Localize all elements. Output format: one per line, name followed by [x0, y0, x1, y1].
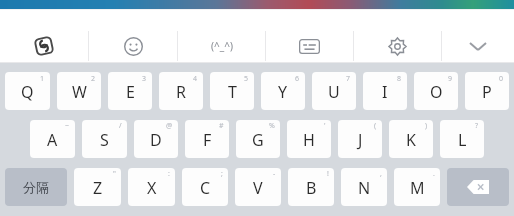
staticText: A [47, 129, 58, 151]
button[interactable]: P [465, 72, 509, 110]
button[interactable]: N [341, 168, 387, 206]
staticText: ( [374, 121, 377, 131]
button[interactable]: V [235, 168, 281, 206]
button[interactable]: O [414, 72, 458, 110]
staticText: # [219, 121, 224, 131]
button[interactable]: C [182, 168, 228, 206]
staticText: % [269, 121, 275, 131]
button[interactable]: Backspace [447, 168, 509, 206]
button[interactable]: I [363, 72, 407, 110]
staticText: C [200, 177, 211, 199]
button[interactable]: Emoji [89, 29, 177, 63]
staticText: L [458, 129, 467, 151]
staticText: T [228, 81, 237, 103]
button[interactable]: Sogou input method [0, 29, 88, 63]
staticText: E [126, 81, 135, 103]
staticText: N [358, 177, 371, 199]
staticText: G [252, 129, 264, 151]
button[interactable]: G [236, 120, 280, 158]
staticText: B [306, 177, 317, 199]
staticText: ) [425, 121, 428, 131]
staticText: 9 [448, 74, 453, 84]
button[interactable]: 分隔 [5, 168, 67, 206]
button[interactable]: M [394, 168, 440, 206]
button[interactable]: B [288, 168, 334, 206]
staticText: J [358, 129, 363, 151]
staticText: P [482, 81, 492, 103]
button[interactable]: K [389, 120, 433, 158]
staticText: H [303, 129, 315, 151]
button[interactable]: Settings [354, 29, 441, 63]
staticText: 2 [91, 74, 96, 84]
staticText: 1 [40, 74, 45, 84]
staticText: - [273, 169, 276, 179]
button[interactable]: Y [261, 72, 305, 110]
staticText: / [119, 121, 122, 131]
button[interactable]: Z [74, 168, 121, 206]
staticText: : [168, 169, 170, 179]
staticText: ' [324, 121, 326, 131]
staticText: X [147, 177, 157, 199]
button[interactable]: J [338, 120, 382, 158]
staticText: M [410, 177, 425, 199]
staticText: S [100, 129, 109, 151]
button[interactable]: H [287, 120, 331, 158]
button[interactable]: W [57, 72, 101, 110]
staticText: (^_^) [211, 39, 233, 53]
staticText: " [113, 169, 116, 179]
staticText: 5 [244, 74, 249, 84]
button[interactable]: Hide keyboard [442, 29, 514, 63]
staticText: ~ [65, 121, 70, 131]
staticText: ? [475, 121, 479, 131]
button[interactable]: D [134, 120, 178, 158]
staticText: ; [221, 169, 223, 179]
staticText: D [150, 129, 162, 151]
button[interactable]: Q [5, 72, 50, 110]
staticText: W [72, 81, 87, 103]
staticText: O [430, 81, 443, 103]
button[interactable]: F [185, 120, 229, 158]
staticText: . [433, 169, 435, 179]
staticText: U [328, 81, 340, 103]
button[interactable]: Keyboard layout [266, 29, 353, 63]
staticText: R [176, 81, 186, 103]
staticText: 0 [499, 74, 504, 84]
button[interactable]: E [108, 72, 152, 110]
staticText: @ [166, 121, 173, 131]
button[interactable]: T [210, 72, 254, 110]
staticText: 分隔 [23, 179, 49, 195]
button[interactable]: U [312, 72, 356, 110]
staticText: I [382, 81, 388, 103]
staticText: 4 [193, 74, 198, 84]
button[interactable]: A [30, 120, 75, 158]
button[interactable]: X [128, 168, 175, 206]
staticText: Z [93, 177, 103, 199]
staticText: V [253, 177, 263, 199]
staticText: 7 [346, 74, 351, 84]
button[interactable]: Kaomoji [178, 29, 265, 63]
button[interactable]: L [440, 120, 484, 158]
staticText: ! [327, 169, 329, 179]
staticText: Q [21, 81, 34, 103]
staticText: K [406, 129, 416, 151]
staticText: Y [278, 81, 288, 103]
staticText: F [203, 129, 212, 151]
staticText: 3 [142, 74, 147, 84]
staticText: , [380, 169, 382, 179]
button[interactable]: R [159, 72, 203, 110]
button[interactable]: S [82, 120, 127, 158]
staticText: 8 [397, 74, 402, 84]
staticText: 6 [295, 74, 300, 84]
